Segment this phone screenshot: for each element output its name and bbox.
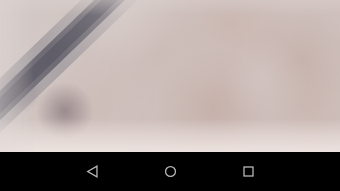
button[interactable]: Back xyxy=(78,152,106,191)
button[interactable]: Recent apps xyxy=(234,152,262,191)
button[interactable] xyxy=(0,0,340,152)
button[interactable]: Home xyxy=(156,152,184,191)
